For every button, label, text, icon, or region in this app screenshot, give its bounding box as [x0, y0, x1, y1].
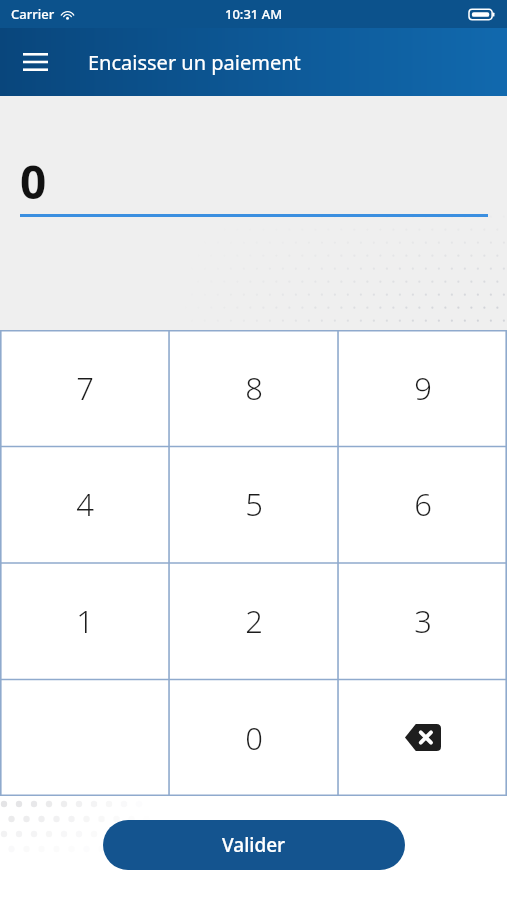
staticText: 1 — [76, 600, 94, 642]
staticText: 6 — [414, 483, 432, 525]
staticText: 9 — [414, 367, 432, 409]
staticText: 10:31 AM — [225, 5, 283, 23]
staticText: 4 — [76, 483, 94, 525]
staticText: 7 — [76, 367, 94, 409]
staticText: 0 — [245, 717, 263, 759]
staticText: 5 — [245, 483, 263, 525]
button[interactable]: 0 — [169, 679, 338, 796]
button[interactable] — [0, 679, 169, 796]
staticText: 0 — [20, 150, 47, 213]
button[interactable]: Effacer — [338, 679, 507, 796]
staticText: Encaisser un paiement — [88, 49, 301, 76]
button[interactable]: 1 — [0, 562, 169, 679]
staticText: Carrier — [11, 5, 55, 23]
button[interactable]: 3 — [338, 562, 507, 679]
button[interactable]: 8 — [169, 330, 338, 446]
button[interactable]: 7 — [0, 330, 169, 446]
staticText: 3 — [414, 600, 432, 642]
staticText: 8 — [245, 367, 263, 409]
staticText: 2 — [245, 600, 263, 642]
button[interactable]: 2 — [169, 562, 338, 679]
button[interactable]: 4 — [0, 446, 169, 562]
button[interactable]: 9 — [338, 330, 507, 446]
button[interactable]: Menu — [13, 40, 57, 84]
staticText: Valider — [222, 832, 286, 858]
button[interactable]: 5 — [169, 446, 338, 562]
button[interactable]: 6 — [338, 446, 507, 562]
button[interactable]: Valider — [103, 820, 405, 870]
